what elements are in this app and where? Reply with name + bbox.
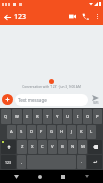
staticText: I xyxy=(77,114,79,120)
button[interactable]: , xyxy=(17,155,26,169)
button[interactable]: Home xyxy=(33,170,47,183)
staticText: Y xyxy=(56,114,59,120)
staticText: Q xyxy=(4,114,8,120)
staticText: B xyxy=(61,144,64,150)
button[interactable]: Shift xyxy=(1,140,16,154)
staticText: Z xyxy=(21,144,24,150)
button[interactable]: Back xyxy=(0,10,14,24)
staticText: Conversation with '123' · Jun 3, 9:00 AM xyxy=(22,85,81,89)
button[interactable]: Text message xyxy=(15,94,88,106)
button[interactable]: Enter xyxy=(87,155,102,169)
staticText: 123 xyxy=(5,160,12,165)
button[interactable]: F xyxy=(37,125,46,139)
button[interactable]: Video call xyxy=(66,10,79,23)
staticText: T xyxy=(46,114,49,120)
button[interactable]: G xyxy=(47,125,56,139)
button[interactable]: K xyxy=(77,125,86,139)
button[interactable]: Call xyxy=(79,10,92,23)
staticText: F xyxy=(40,129,43,135)
staticText: H xyxy=(60,129,64,135)
button[interactable]: J xyxy=(67,125,76,139)
button[interactable]: T xyxy=(43,109,52,124)
button[interactable]: X xyxy=(28,140,37,154)
button[interactable]: Q xyxy=(1,109,11,124)
button[interactable]: U xyxy=(63,109,72,124)
button[interactable]: Z xyxy=(17,140,27,154)
button[interactable]: D xyxy=(27,125,36,139)
staticText: A xyxy=(10,129,13,135)
button[interactable]: Attach xyxy=(2,94,13,105)
button[interactable]: M xyxy=(78,140,87,154)
staticText: L xyxy=(90,129,93,135)
staticText: G xyxy=(50,129,54,135)
staticText: C xyxy=(41,144,44,150)
staticText: J xyxy=(71,129,73,135)
staticText: X xyxy=(31,144,34,150)
button[interactable]: B xyxy=(58,140,67,154)
button[interactable]: E xyxy=(23,109,32,124)
button[interactable]: I xyxy=(73,109,82,124)
button[interactable]: C xyxy=(38,140,47,154)
button[interactable]: 123 xyxy=(1,155,16,169)
staticText: Text message xyxy=(18,97,47,103)
button[interactable]: N xyxy=(68,140,77,154)
button[interactable]: R xyxy=(33,109,42,124)
staticText: E xyxy=(26,114,29,120)
staticText: N xyxy=(71,144,75,150)
button[interactable]: L xyxy=(87,125,96,139)
staticText: S xyxy=(20,129,23,135)
staticText: K xyxy=(80,129,83,135)
button[interactable]: S xyxy=(17,125,26,139)
staticText: P xyxy=(96,114,99,120)
button[interactable]: W xyxy=(12,109,22,124)
button[interactable]: Hide keyboard xyxy=(80,170,94,183)
staticText: . xyxy=(81,159,83,165)
staticText: O xyxy=(86,114,90,120)
button[interactable]: V xyxy=(48,140,57,154)
staticText: M xyxy=(81,144,85,150)
button[interactable]: A xyxy=(7,125,16,139)
staticText: 123 xyxy=(14,12,27,22)
button[interactable]: O xyxy=(83,109,92,124)
staticText: D xyxy=(30,129,34,135)
button[interactable]: . xyxy=(77,155,86,169)
staticText: , xyxy=(21,159,23,165)
button[interactable]: P xyxy=(93,109,102,124)
button[interactable]: Send SMS xyxy=(90,95,101,105)
staticText: R xyxy=(36,114,39,120)
staticText: SMS xyxy=(93,101,99,105)
button[interactable]: H xyxy=(57,125,66,139)
button[interactable]: Recents xyxy=(56,170,70,183)
staticText: V xyxy=(51,144,54,150)
button[interactable]: Backspace xyxy=(88,140,102,154)
staticText: U xyxy=(66,114,70,120)
button[interactable]: Back xyxy=(9,170,23,183)
staticText: W xyxy=(15,114,19,120)
button[interactable]: More options xyxy=(92,11,103,22)
button[interactable]: Y xyxy=(53,109,62,124)
